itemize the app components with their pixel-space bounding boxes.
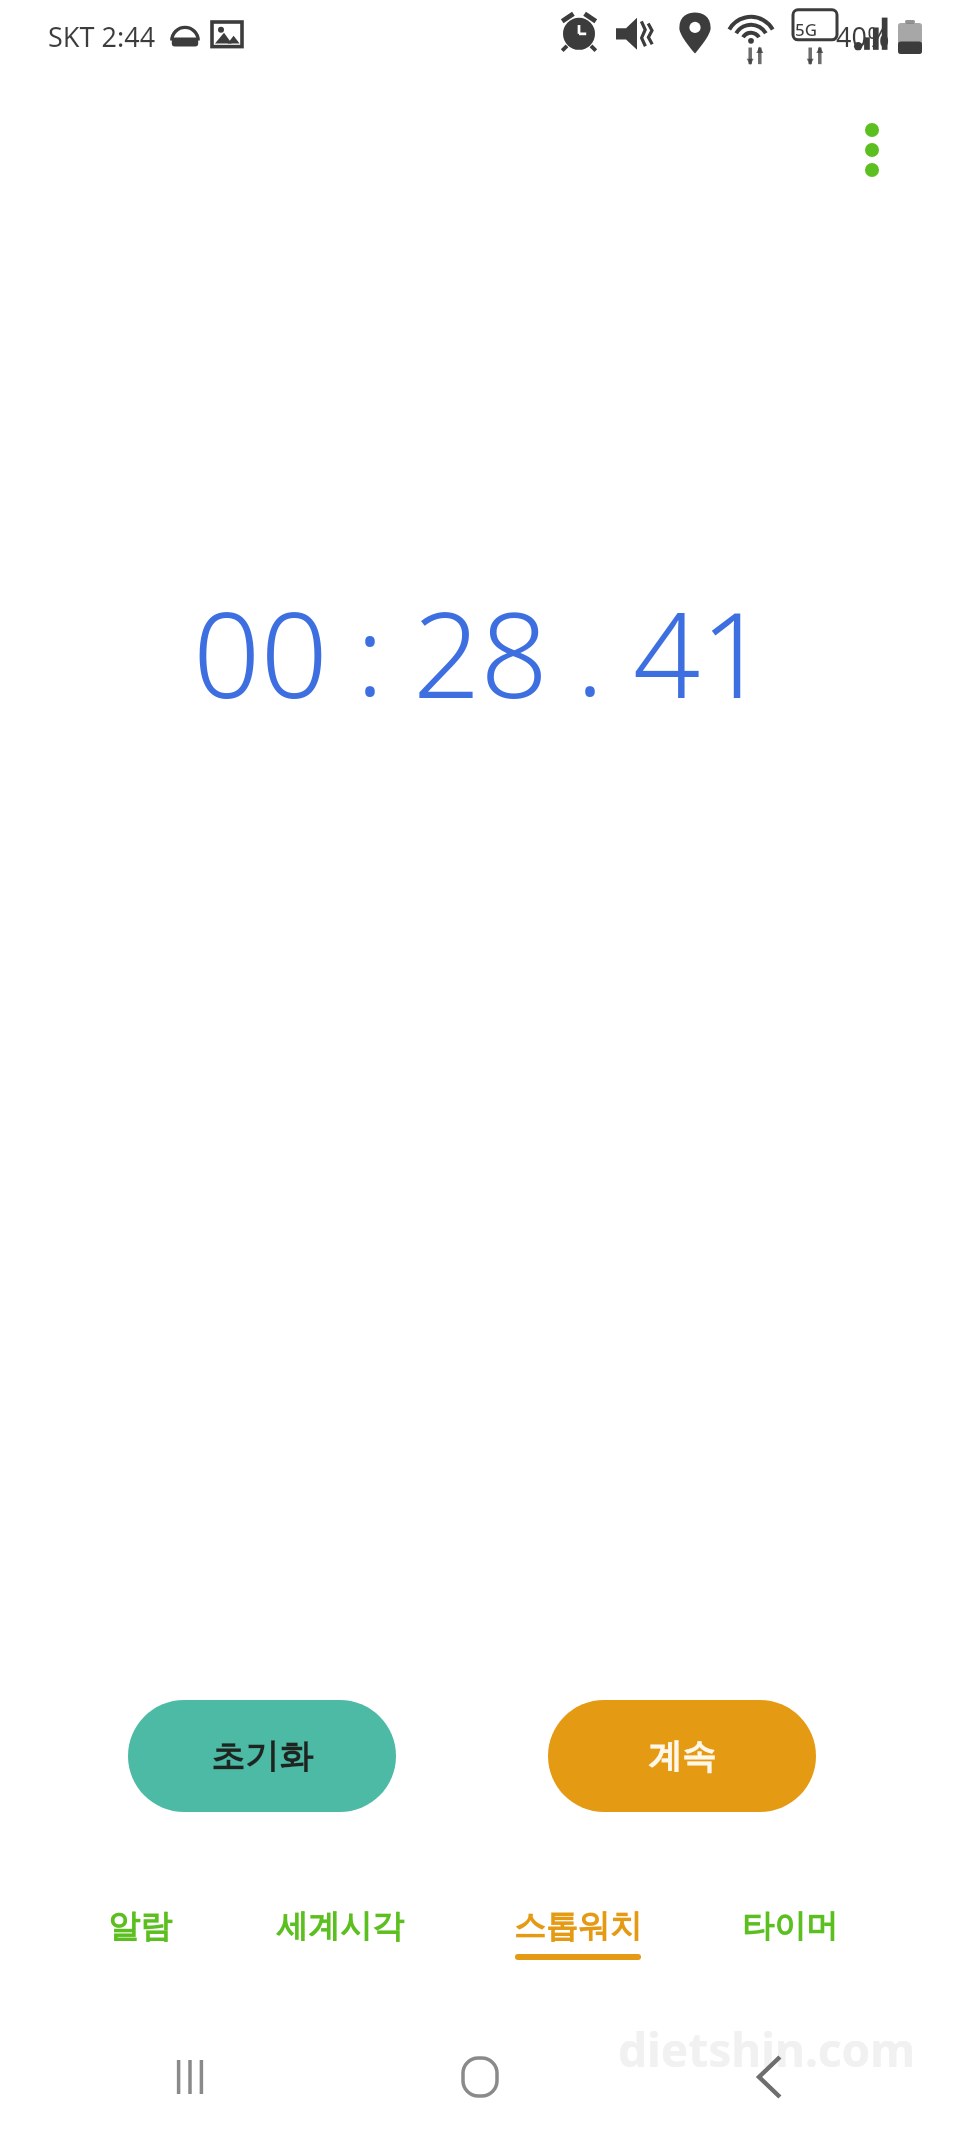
button[interactable]: 타이머 [690, 1900, 890, 2000]
button[interactable]: More options [842, 120, 902, 180]
staticText: 40% [836, 18, 890, 55]
button[interactable]: Recent apps [150, 2037, 230, 2117]
staticText: 타이머 [742, 1906, 838, 1946]
staticText: 초기화 [211, 1735, 313, 1778]
staticText: 스톱워치 [514, 1906, 642, 1946]
button[interactable]: 계속 [548, 1700, 816, 1812]
staticText: . [548, 578, 633, 728]
button[interactable]: 스톱워치 [478, 1900, 678, 2000]
button[interactable]: 초기화 [128, 1700, 396, 1812]
staticText: SKT 2:44 [48, 18, 156, 55]
staticText: 41 [633, 572, 768, 733]
staticText: 세계시각 [276, 1906, 404, 1946]
staticText: 28 [413, 572, 548, 733]
staticText: dietshin.com [618, 2018, 916, 2081]
staticText: 계속 [648, 1735, 716, 1778]
staticText: 알람 [108, 1906, 172, 1946]
button[interactable]: 세계시각 [240, 1900, 440, 2000]
button[interactable]: Back [730, 2037, 810, 2117]
button[interactable]: 알람 [40, 1900, 240, 2000]
staticText: 00 [193, 572, 328, 733]
button[interactable]: Home [440, 2037, 520, 2117]
staticText: 5G [795, 18, 818, 41]
staticText: : [328, 578, 413, 728]
